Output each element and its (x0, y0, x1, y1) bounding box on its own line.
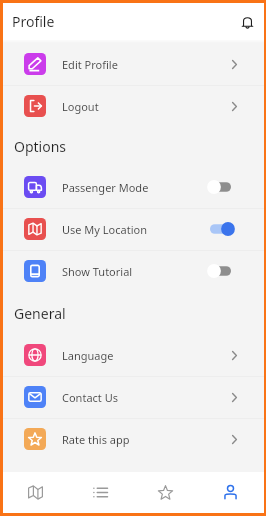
button[interactable]: Show Tutorial (3, 250, 264, 292)
button[interactable]: Profile (198, 472, 263, 513)
staticText: General (14, 304, 66, 323)
button[interactable]: List (68, 472, 133, 513)
button[interactable]: Favorites (133, 472, 198, 513)
button[interactable]: Notifications (234, 9, 260, 35)
button[interactable]: Use My Location (3, 208, 264, 250)
staticText: Rate this app (62, 432, 130, 447)
button[interactable]: Passenger Mode (3, 166, 264, 208)
button[interactable]: Contact Us (3, 376, 264, 418)
staticText: Use My Location (62, 222, 147, 237)
button[interactable]: Map (3, 472, 68, 513)
button[interactable]: Logout (3, 85, 264, 127)
button[interactable]: Rate this app (3, 418, 264, 460)
staticText: Passenger Mode (62, 180, 149, 195)
button[interactable]: Language (3, 334, 264, 376)
staticText: Edit Profile (62, 57, 118, 72)
staticText: Profile (12, 12, 55, 31)
staticText: Show Tutorial (62, 264, 133, 279)
staticText: Language (62, 348, 114, 363)
staticText: Contact Us (62, 390, 118, 405)
staticText: Options (14, 137, 67, 156)
button[interactable]: Edit Profile (3, 43, 264, 85)
staticText: Logout (62, 99, 99, 114)
